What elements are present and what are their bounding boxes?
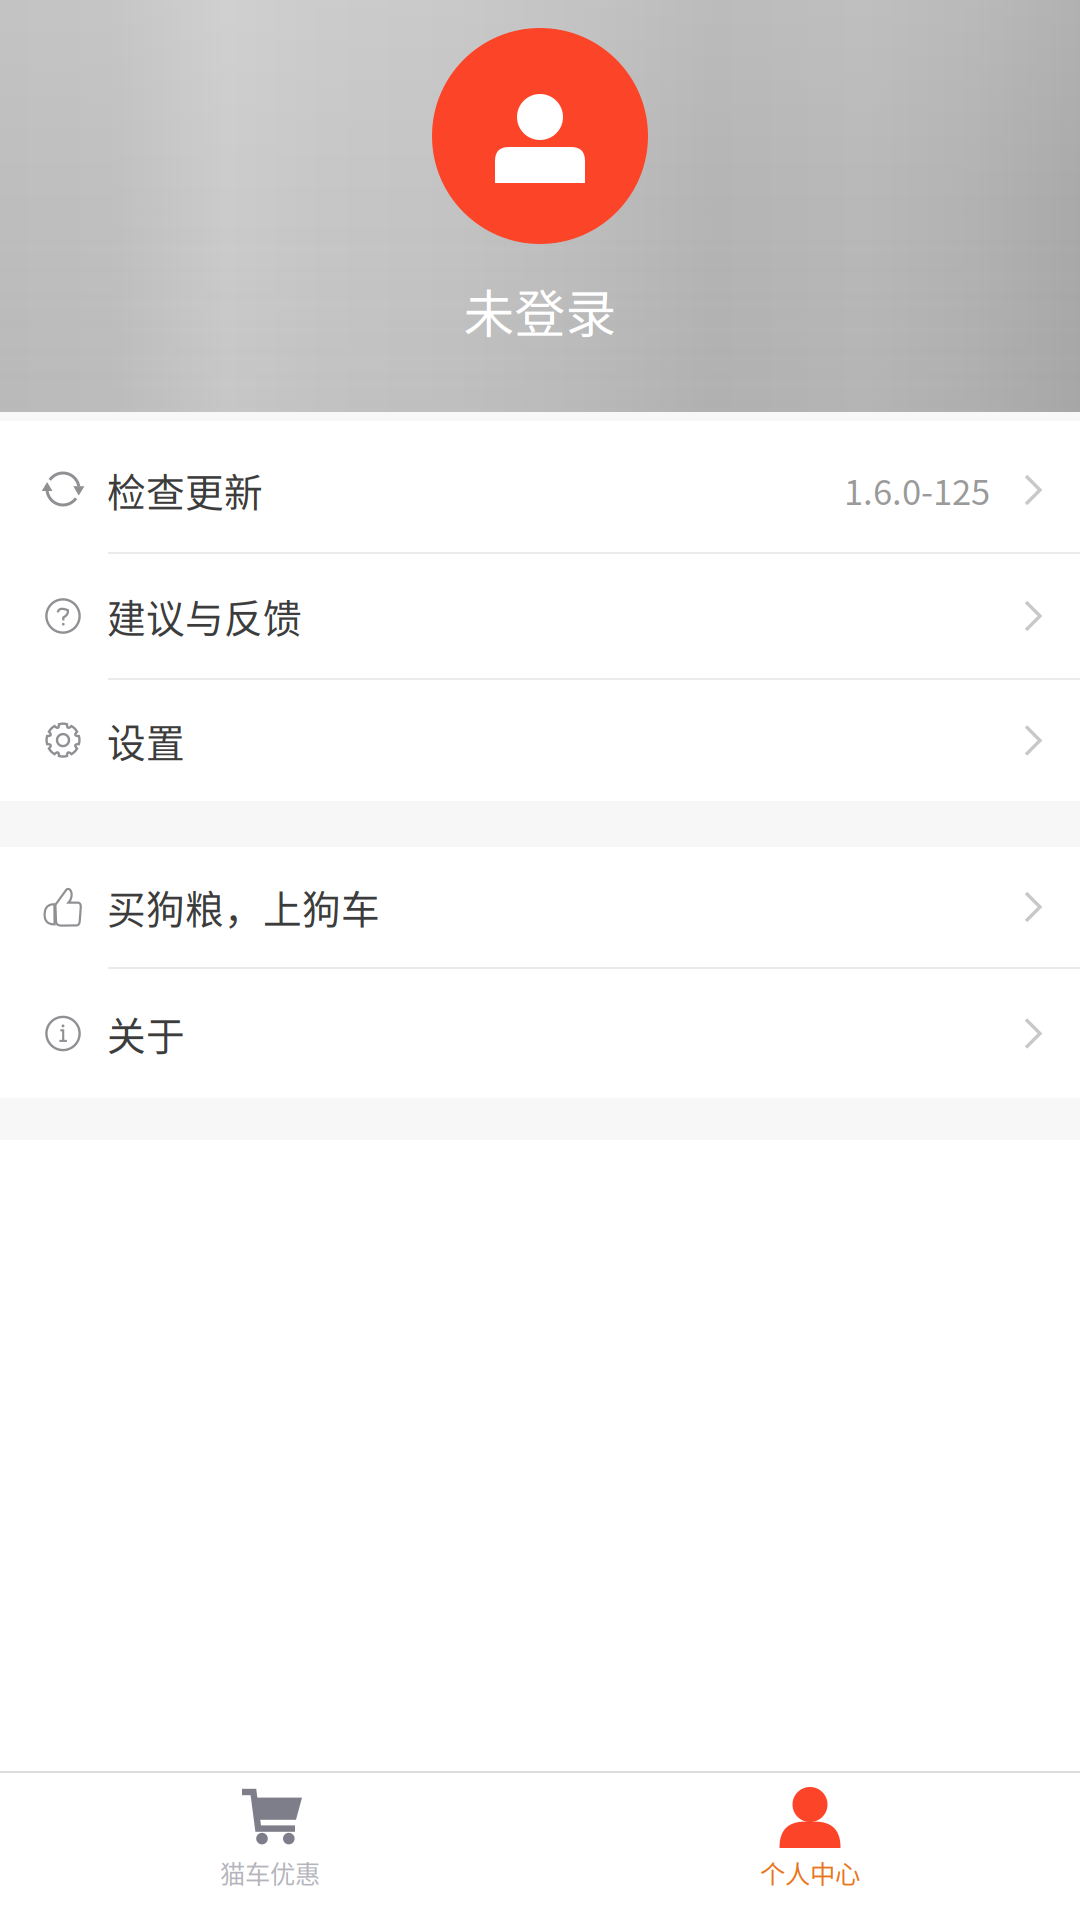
button[interactable]: 个人中心 — [540, 1773, 1080, 1920]
button[interactable]: 猫车优惠 — [0, 1773, 540, 1920]
button[interactable]: 关于 — [0, 969, 1080, 1098]
staticText: 猫车优惠 — [220, 1854, 320, 1891]
button[interactable]: 设置 — [0, 680, 1080, 801]
button[interactable]: 买狗粮，上狗车 — [0, 847, 1080, 967]
staticText: 检查更新 — [107, 462, 263, 518]
button[interactable]: 检查更新 — [0, 428, 1080, 552]
staticText: 未登录 — [463, 274, 616, 347]
staticText: 1.6.0-125 — [844, 465, 990, 515]
staticText: 个人中心 — [760, 1854, 860, 1891]
staticText: 买狗粮，上狗车 — [107, 879, 380, 935]
staticText: 关于 — [107, 1005, 185, 1061]
staticText: 设置 — [107, 712, 185, 768]
button[interactable]: 建议与反馈 — [0, 554, 1080, 678]
staticText: 建议与反馈 — [107, 588, 302, 644]
